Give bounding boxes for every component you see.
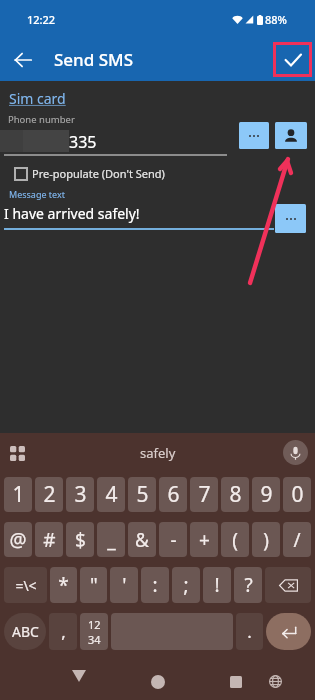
button[interactable]: Change language bbox=[260, 666, 291, 697]
staticText: Sim card bbox=[9, 89, 66, 108]
button[interactable]: 5 bbox=[128, 477, 156, 512]
button[interactable]: - bbox=[159, 522, 187, 557]
button[interactable]: ( bbox=[221, 522, 249, 557]
button[interactable]: 7 bbox=[190, 477, 218, 512]
button[interactable]: 4 bbox=[97, 477, 125, 512]
staticText: - bbox=[170, 527, 177, 553]
staticText: ) bbox=[263, 527, 269, 553]
button[interactable]: Done bbox=[273, 42, 312, 77]
button[interactable]: Switch keyboard bbox=[4, 440, 30, 466]
button[interactable]: 0 bbox=[283, 477, 311, 512]
button[interactable]: Home bbox=[142, 666, 173, 697]
button[interactable]: : bbox=[141, 567, 169, 603]
staticText: 7 bbox=[198, 480, 211, 509]
button[interactable]: Numbers bbox=[80, 613, 108, 650]
staticText: 5 bbox=[136, 480, 149, 509]
staticText: + bbox=[199, 527, 210, 553]
staticText: ' bbox=[122, 572, 127, 598]
staticText: =\< bbox=[15, 576, 37, 595]
button[interactable]: Close keyboard bbox=[63, 660, 94, 691]
button[interactable]: Enter bbox=[266, 613, 311, 650]
staticText: # bbox=[43, 527, 56, 553]
staticText: 88% bbox=[265, 12, 287, 27]
staticText: Message text bbox=[9, 188, 66, 200]
staticText: 4 bbox=[105, 480, 118, 509]
staticText: Phone number bbox=[8, 113, 75, 126]
staticText: @ bbox=[9, 527, 27, 553]
staticText: . bbox=[247, 620, 252, 643]
button[interactable]: ' bbox=[110, 567, 138, 603]
button[interactable]: Navigate up bbox=[4, 41, 42, 79]
staticText: 6 bbox=[167, 480, 180, 509]
staticText: 2 bbox=[43, 480, 56, 509]
button[interactable]: =\< bbox=[4, 567, 47, 603]
button[interactable]: Backspace bbox=[265, 567, 311, 603]
button[interactable]: / bbox=[283, 522, 311, 557]
button[interactable]: Sim card bbox=[6, 89, 69, 108]
staticText: _ bbox=[107, 527, 116, 553]
staticText: * bbox=[58, 572, 69, 598]
staticText: 9 bbox=[260, 480, 273, 509]
button[interactable]: More options bbox=[275, 204, 306, 233]
staticText: Send SMS bbox=[54, 48, 134, 71]
staticText: & bbox=[135, 527, 149, 553]
button[interactable]: 3 bbox=[66, 477, 94, 512]
staticText: , bbox=[61, 620, 66, 643]
button[interactable]: More options bbox=[239, 122, 269, 149]
button[interactable]: * bbox=[50, 567, 77, 603]
staticText: ! bbox=[214, 572, 220, 598]
staticText: 335 bbox=[69, 131, 97, 153]
button[interactable]: @ bbox=[4, 522, 32, 557]
button[interactable]: 9 bbox=[252, 477, 280, 512]
button[interactable]: Voice input bbox=[283, 440, 308, 465]
staticText: " bbox=[90, 572, 98, 598]
staticText: 34 bbox=[88, 632, 101, 647]
staticText: $ bbox=[75, 527, 86, 553]
button[interactable]: # bbox=[35, 522, 63, 557]
button[interactable]: ; bbox=[172, 567, 200, 603]
staticText: Pre-populate (Don't Send) bbox=[32, 166, 165, 181]
button[interactable]: _ bbox=[97, 522, 125, 557]
button[interactable]: . bbox=[236, 613, 263, 650]
button[interactable]: ) bbox=[252, 522, 280, 557]
button[interactable]: 6 bbox=[159, 477, 187, 512]
button[interactable]: ? bbox=[234, 567, 262, 603]
staticText: : bbox=[152, 572, 158, 598]
staticText: 1 bbox=[12, 480, 25, 509]
staticText: 12 bbox=[88, 617, 101, 632]
staticText: ( bbox=[232, 527, 238, 553]
staticText: safely bbox=[140, 444, 176, 462]
staticText: 12:22 bbox=[27, 12, 56, 27]
button[interactable]: Recent apps bbox=[220, 666, 251, 697]
button[interactable]: 1 bbox=[4, 477, 32, 512]
staticText: / bbox=[293, 527, 301, 553]
button[interactable]: " bbox=[80, 567, 107, 603]
button[interactable]: , bbox=[49, 613, 77, 650]
staticText: ABC bbox=[12, 622, 39, 641]
button[interactable]: Pre-populate (Don't Send) bbox=[10, 162, 169, 185]
button[interactable]: Choose contact bbox=[275, 122, 307, 149]
button[interactable]: $ bbox=[66, 522, 94, 557]
button[interactable]: 2 bbox=[35, 477, 63, 512]
button[interactable]: ABC bbox=[4, 613, 46, 650]
staticText: I have arrived safely! bbox=[4, 204, 140, 223]
staticText: 3 bbox=[74, 480, 87, 509]
button[interactable]: 8 bbox=[221, 477, 249, 512]
button[interactable]: ! bbox=[203, 567, 231, 603]
button[interactable]: + bbox=[190, 522, 218, 557]
staticText: ; bbox=[183, 572, 189, 598]
staticText: ? bbox=[244, 572, 253, 598]
staticText: 0 bbox=[291, 480, 304, 509]
button[interactable]: & bbox=[128, 522, 156, 557]
staticText: 8 bbox=[229, 480, 242, 509]
